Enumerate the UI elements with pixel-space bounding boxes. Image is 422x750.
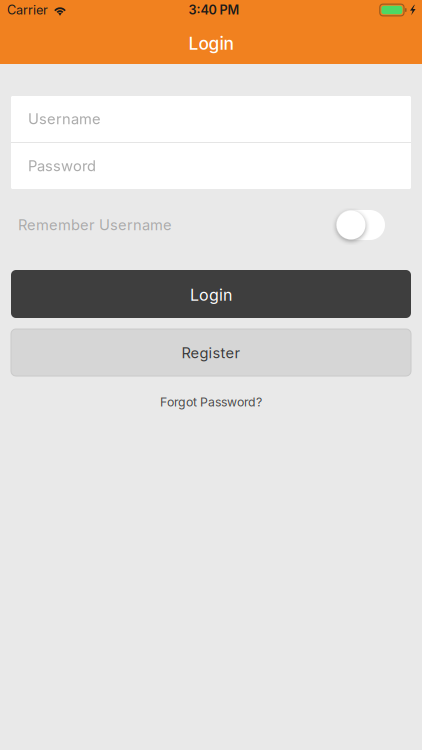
button[interactable]: Register xyxy=(11,329,411,376)
staticText: Login xyxy=(190,285,232,305)
staticText: 3:40 PM xyxy=(188,2,239,18)
staticText: Password xyxy=(28,157,96,175)
button[interactable]: Remember Username toggle, off xyxy=(336,210,385,240)
button[interactable]: Password xyxy=(11,143,411,189)
button[interactable]: Login xyxy=(11,270,411,318)
staticText: Login xyxy=(188,33,233,54)
staticText: Remember Username xyxy=(18,216,172,234)
staticText: Username xyxy=(28,110,101,128)
staticText: Forgot Password? xyxy=(160,395,262,409)
button[interactable]: Username xyxy=(11,96,411,142)
button[interactable]: Forgot Password? xyxy=(154,392,268,412)
staticText: Carrier xyxy=(7,2,48,18)
staticText: Register xyxy=(181,344,240,362)
